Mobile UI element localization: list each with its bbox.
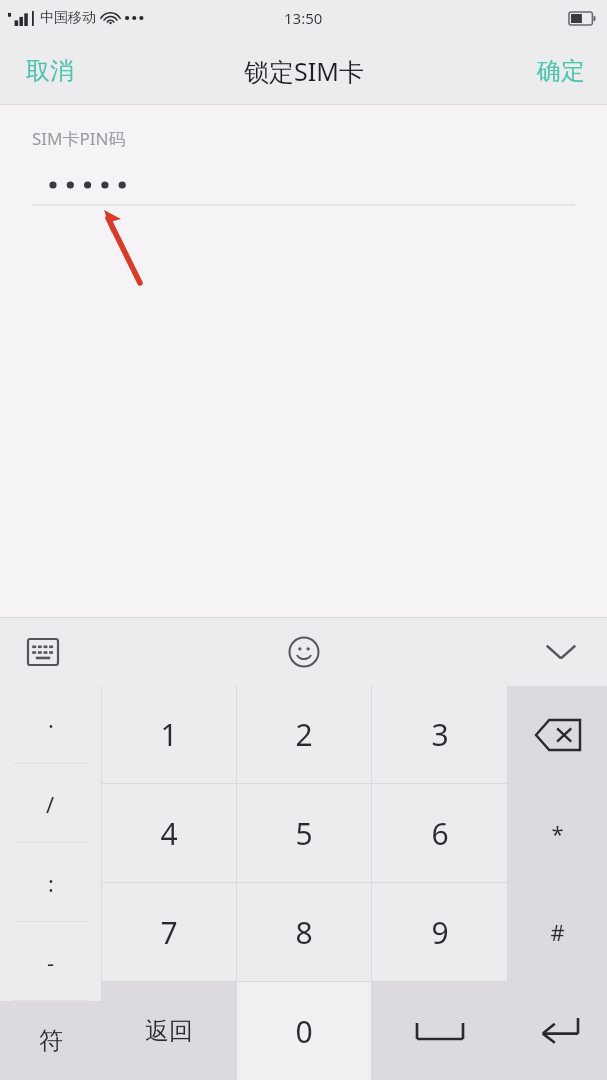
staticText: 符: [39, 1026, 63, 1056]
staticText: #: [550, 917, 565, 947]
button[interactable]: 取消: [0, 36, 100, 105]
staticText: ·: [48, 710, 54, 740]
staticText: 9: [431, 912, 449, 953]
button[interactable]: 0: [237, 982, 371, 1080]
staticText: 3: [431, 714, 449, 755]
staticText: 0: [295, 1011, 313, 1052]
button[interactable]: 符: [0, 1001, 101, 1080]
button[interactable]: 1: [102, 686, 236, 783]
staticText: 5: [295, 813, 313, 854]
staticText: 6: [431, 813, 449, 854]
staticText: 中国移动: [40, 9, 96, 27]
button[interactable]: Emoji: [276, 624, 332, 680]
button[interactable]: 确定: [515, 36, 607, 105]
button[interactable]: 5: [237, 784, 371, 882]
button[interactable]: 返回: [102, 982, 236, 1080]
staticText: 1: [160, 714, 178, 755]
button[interactable]: 4: [102, 784, 236, 882]
staticText: 13:50: [284, 8, 323, 28]
button[interactable]: #: [508, 883, 607, 981]
button[interactable]: -: [0, 922, 101, 1001]
button[interactable]: :: [0, 843, 101, 922]
button[interactable]: 3: [372, 686, 507, 783]
button[interactable]: *: [508, 784, 607, 882]
staticText: 返回: [145, 1016, 193, 1046]
staticText: 锁定SIM卡: [244, 54, 364, 88]
button[interactable]: /: [0, 764, 101, 843]
button[interactable]: 9: [372, 883, 507, 981]
button[interactable]: 2: [237, 686, 371, 783]
staticText: *: [551, 818, 564, 848]
staticText: :: [48, 868, 54, 898]
staticText: 取消: [26, 56, 74, 86]
button[interactable]: Backspace: [508, 686, 607, 783]
staticText: 7: [160, 912, 178, 953]
button[interactable]: 8: [237, 883, 371, 981]
staticText: 确定: [537, 56, 585, 86]
button[interactable]: 7: [102, 883, 236, 981]
button[interactable]: Switch keyboard: [18, 627, 68, 677]
staticText: 8: [295, 912, 313, 953]
button[interactable]: Space: [372, 982, 507, 1080]
staticText: -: [47, 947, 55, 977]
staticText: /: [46, 789, 55, 819]
button[interactable]: ·: [0, 686, 101, 764]
staticText: 4: [160, 813, 178, 854]
button[interactable]: Hide keyboard: [533, 624, 589, 680]
staticText: 2: [295, 714, 313, 755]
staticText: SIM卡PIN码: [32, 127, 126, 150]
button[interactable]: Enter: [508, 982, 607, 1080]
button[interactable]: 6: [372, 784, 507, 882]
